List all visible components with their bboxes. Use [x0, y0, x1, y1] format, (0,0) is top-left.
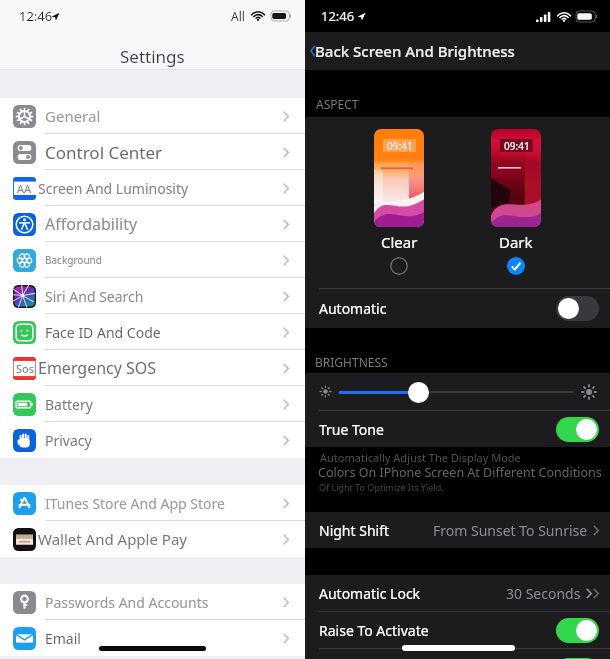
button[interactable]: Wallet And Apple Pay: [0, 521, 305, 557]
staticText: All: [231, 8, 245, 24]
button[interactable]: Affordability: [0, 206, 305, 242]
staticText: 09:41: [387, 139, 413, 152]
staticText: Automatic Lock: [319, 584, 421, 603]
button[interactable]: Siri And Search: [0, 278, 305, 314]
staticText: Background: [45, 253, 102, 267]
staticText: ITunes Store And App Store: [45, 494, 225, 513]
button[interactable]: Email: [0, 620, 305, 656]
button[interactable]: Toggle: [556, 296, 599, 321]
staticText: Automatic: [319, 299, 387, 318]
staticText: 30 Seconds: [506, 584, 581, 603]
button[interactable]: ITunes Store And App Store: [0, 485, 305, 521]
staticText: True Tone: [319, 420, 384, 439]
staticText: AA: [17, 181, 32, 196]
staticText: Battery: [45, 395, 93, 414]
staticText: ASPECT: [316, 96, 359, 112]
staticText: BRIGHTNESS: [315, 354, 388, 370]
button[interactable]: General: [0, 98, 305, 134]
staticText: Raise To Activate: [319, 621, 429, 640]
staticText: General: [45, 106, 101, 126]
button[interactable]: Control Center: [0, 134, 305, 170]
button[interactable]: Automatic Lock: [305, 575, 610, 611]
staticText: Wallet And Apple Pay: [38, 529, 187, 549]
button[interactable]: Toggle: [556, 658, 599, 659]
button[interactable]: Sos: [0, 350, 305, 386]
staticText: 12:46: [19, 7, 53, 25]
staticText: Back Screen And Brightness: [315, 41, 515, 61]
staticText: Passwords And Accounts: [45, 593, 209, 612]
staticText: Privacy: [45, 431, 92, 450]
button[interactable]: Raise To Activate: [305, 612, 610, 648]
staticText: Affordability: [45, 213, 138, 235]
button[interactable]: Automatic: [305, 289, 610, 328]
button[interactable]: Clear: [374, 129, 424, 227]
button[interactable]: Background: [0, 242, 305, 278]
staticText: Dark: [499, 232, 533, 252]
staticText: Sos: [16, 361, 34, 376]
button[interactable]: AA: [0, 170, 305, 206]
staticText: Siri And Search: [45, 287, 144, 306]
button[interactable]: Toggle: [556, 417, 599, 442]
staticText: Email: [45, 629, 81, 648]
staticText: Control Center: [45, 141, 163, 164]
staticText: Colors On IPhone Screen At Different Con…: [318, 464, 602, 481]
button[interactable]: True Tone: [305, 411, 610, 447]
button[interactable]: Dark: [491, 129, 541, 227]
button[interactable]: Blue Light: [305, 655, 610, 659]
button[interactable]: Back Screen And Brightness: [305, 37, 521, 65]
staticText: 12:46: [321, 7, 355, 25]
button[interactable]: Clear selected: [390, 257, 408, 275]
button[interactable]: Privacy: [0, 422, 305, 458]
staticText: Automatically Adjust The Display Mode: [320, 450, 521, 465]
staticText: 09:41: [504, 139, 530, 152]
button[interactable]: Battery: [0, 386, 305, 422]
staticText: Clear: [381, 232, 418, 252]
staticText: From Sunset To Sunrise: [433, 521, 588, 540]
staticText: Screen And Luminosity: [38, 179, 189, 198]
staticText: Night Shift: [319, 521, 390, 540]
staticText: Emergency SOS: [38, 357, 157, 379]
button[interactable]: Night Shift: [305, 512, 610, 548]
staticText: Settings: [120, 45, 185, 68]
staticText: Face ID And Code: [45, 323, 161, 342]
button[interactable]: Dark selected: [507, 257, 525, 275]
staticText: Of Light To Optimize Its Yield.: [319, 481, 444, 493]
button[interactable]: Passwords And Accounts: [0, 584, 305, 620]
button[interactable]: Face ID And Code: [0, 314, 305, 350]
button[interactable]: Toggle: [556, 618, 599, 643]
